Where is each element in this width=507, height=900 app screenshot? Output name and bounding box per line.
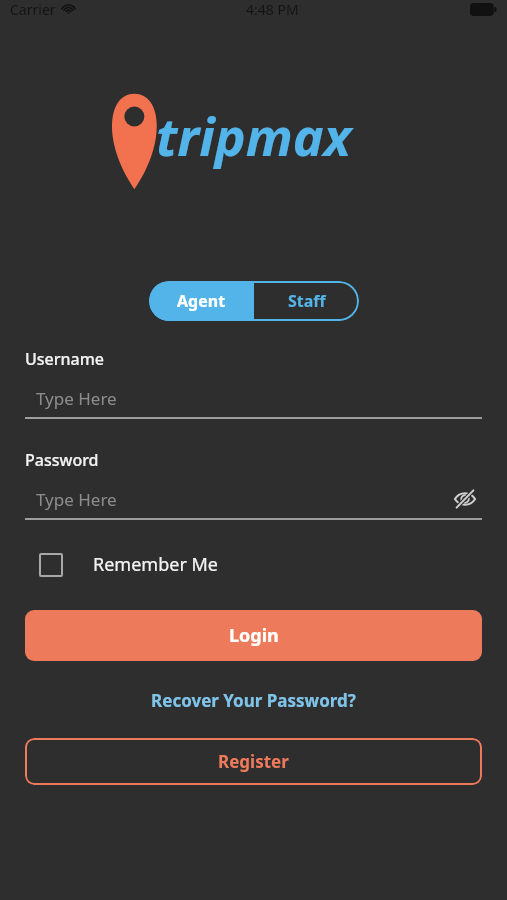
button[interactable]: Agent <box>149 281 254 321</box>
staticText: Username <box>25 348 105 370</box>
button[interactable]: Remember Me <box>25 552 482 577</box>
staticText: Type Here <box>36 488 117 511</box>
button[interactable]: Show password <box>448 484 482 514</box>
staticText: Staff <box>288 290 326 312</box>
staticText: Recover Your Password? <box>151 689 356 712</box>
button[interactable]: Login <box>25 610 482 661</box>
staticText: Type Here <box>36 387 117 410</box>
staticText: Carrier <box>10 0 56 19</box>
staticText: Password <box>25 449 99 471</box>
button[interactable]: Staff <box>254 281 359 321</box>
staticText: Remember Me <box>93 552 218 577</box>
staticText: tripmax <box>156 100 352 171</box>
staticText: 4:48 PM <box>246 0 299 19</box>
button[interactable]: Recover Your Password? <box>143 685 364 716</box>
staticText: Login <box>229 623 279 648</box>
button[interactable]: Register <box>25 738 482 785</box>
staticText: Agent <box>177 290 226 312</box>
staticText: Register <box>218 750 289 773</box>
